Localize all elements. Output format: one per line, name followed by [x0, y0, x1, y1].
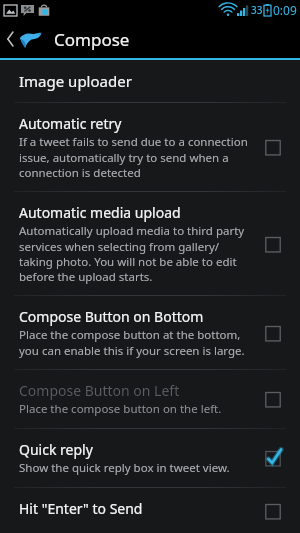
- staticText: 33: [251, 3, 263, 17]
- button[interactable]: Navigate up: [0, 20, 46, 58]
- staticText: If a tweet fails to send due to a connec…: [19, 134, 248, 180]
- button[interactable]: Compose Button on Bottom: [256, 316, 290, 350]
- button[interactable]: Hit "Enter" to Send: [0, 488, 300, 533]
- button[interactable]: Image uploader: [0, 60, 300, 102]
- button[interactable]: Automatic retry: [256, 130, 290, 164]
- button[interactable]: Quick reply: [0, 429, 300, 487]
- button[interactable]: Quick reply: [256, 441, 290, 475]
- staticText: Hit "Enter" to Send: [19, 499, 143, 518]
- button[interactable]: Compose Button on Bottom: [0, 296, 300, 369]
- button[interactable]: Compose Button on Left: [256, 382, 290, 416]
- button[interactable]: Automatic media upload: [0, 192, 300, 295]
- staticText: Quick reply: [19, 440, 93, 459]
- staticText: Compose Button on Left: [19, 381, 180, 400]
- button[interactable]: Hit "Enter" to Send: [256, 499, 290, 522]
- button[interactable]: Automatic media upload: [256, 227, 290, 261]
- staticText: Automatic retry: [19, 114, 122, 133]
- staticText: Image uploader: [19, 71, 132, 91]
- staticText: Place the compose button on the left.: [19, 401, 222, 417]
- staticText: Automatic media upload: [19, 203, 181, 222]
- staticText: Place the compose button at the bottom, …: [19, 327, 248, 358]
- button[interactable]: Automatic retry: [0, 103, 300, 191]
- staticText: Automatically upload media to third part…: [19, 223, 248, 284]
- staticText: 0:09: [273, 2, 297, 18]
- staticText: Show the quick reply box in tweet view.: [19, 460, 230, 476]
- button[interactable]: Compose Button on Left: [0, 370, 300, 428]
- staticText: Compose Button on Bottom: [19, 307, 204, 326]
- staticText: Compose: [54, 28, 130, 51]
